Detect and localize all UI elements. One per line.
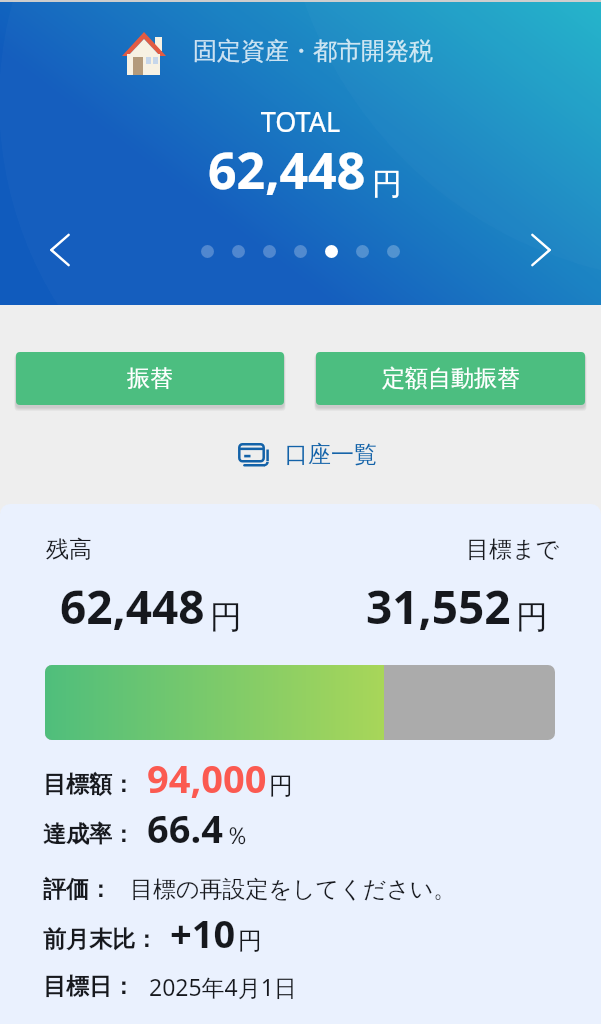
staticText: 62,448 <box>60 575 205 638</box>
staticText: 66.4 <box>147 802 223 854</box>
staticText: 定額自動振替 <box>382 364 520 393</box>
staticText: ％ <box>225 821 249 851</box>
staticText: 31,552 <box>366 575 511 638</box>
staticText: 固定資産・都市開発税 <box>193 36 433 66</box>
staticText: 円 <box>372 165 402 203</box>
staticText: 円 <box>516 597 548 637</box>
staticText: 口座一覧 <box>285 440 377 469</box>
staticText: 目標日： <box>43 972 135 1001</box>
button[interactable]: 振替 <box>16 352 284 405</box>
button[interactable]: Next card <box>519 228 563 272</box>
staticText: 評価： <box>43 875 112 904</box>
staticText: 2025年4月1日 <box>149 971 297 1002</box>
staticText: 円 <box>269 771 293 801</box>
button[interactable]: 口座一覧 <box>238 435 377 475</box>
staticText: 目標額： <box>43 770 135 799</box>
staticText: 前月末比： <box>43 925 158 954</box>
staticText: 達成率： <box>43 820 135 849</box>
staticText: 目標まで <box>466 535 560 564</box>
staticText: 円 <box>210 597 242 637</box>
staticText: 振替 <box>127 364 173 393</box>
button[interactable]: 定額自動振替 <box>316 352 585 405</box>
staticText: 94,000 <box>147 752 267 804</box>
staticText: 残高 <box>46 535 92 564</box>
staticText: 62,448 <box>208 136 366 204</box>
staticText: 目標の再設定をしてください。 <box>130 875 457 904</box>
staticText: +10 <box>170 907 236 959</box>
staticText: TOTAL <box>0 103 601 140</box>
button[interactable]: Previous card <box>38 228 82 272</box>
staticText: 円 <box>238 926 262 956</box>
